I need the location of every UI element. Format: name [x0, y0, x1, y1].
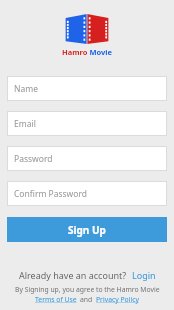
button[interactable]: Terms of Use: [35, 295, 77, 304]
staticText: Terms of Use: [35, 295, 77, 304]
staticText: Already have an account?: [19, 269, 127, 281]
other: Hamro Movie logo: [63, 13, 111, 45]
staticText: Privacy Policy: [96, 295, 139, 304]
button[interactable]: Login: [132, 269, 156, 281]
staticText: Confirm Password: [14, 188, 87, 200]
staticText: Hamro Movie: [62, 47, 112, 57]
staticText: Name: [14, 83, 38, 95]
staticText: By Signing up, you agree to the Hamro Mo…: [15, 285, 160, 294]
button[interactable]: Confirm Password: [7, 181, 167, 206]
button[interactable]: Privacy Policy: [96, 295, 139, 304]
button[interactable]: Email: [7, 111, 167, 136]
staticText: Login: [132, 269, 156, 281]
button[interactable]: Password: [7, 146, 167, 171]
staticText: Email: [14, 118, 36, 130]
staticText: Sign Up: [68, 223, 106, 237]
staticText: and: [80, 295, 93, 304]
button[interactable]: Name: [7, 76, 167, 101]
button[interactable]: Sign Up: [7, 217, 167, 242]
staticText: Password: [14, 153, 53, 165]
